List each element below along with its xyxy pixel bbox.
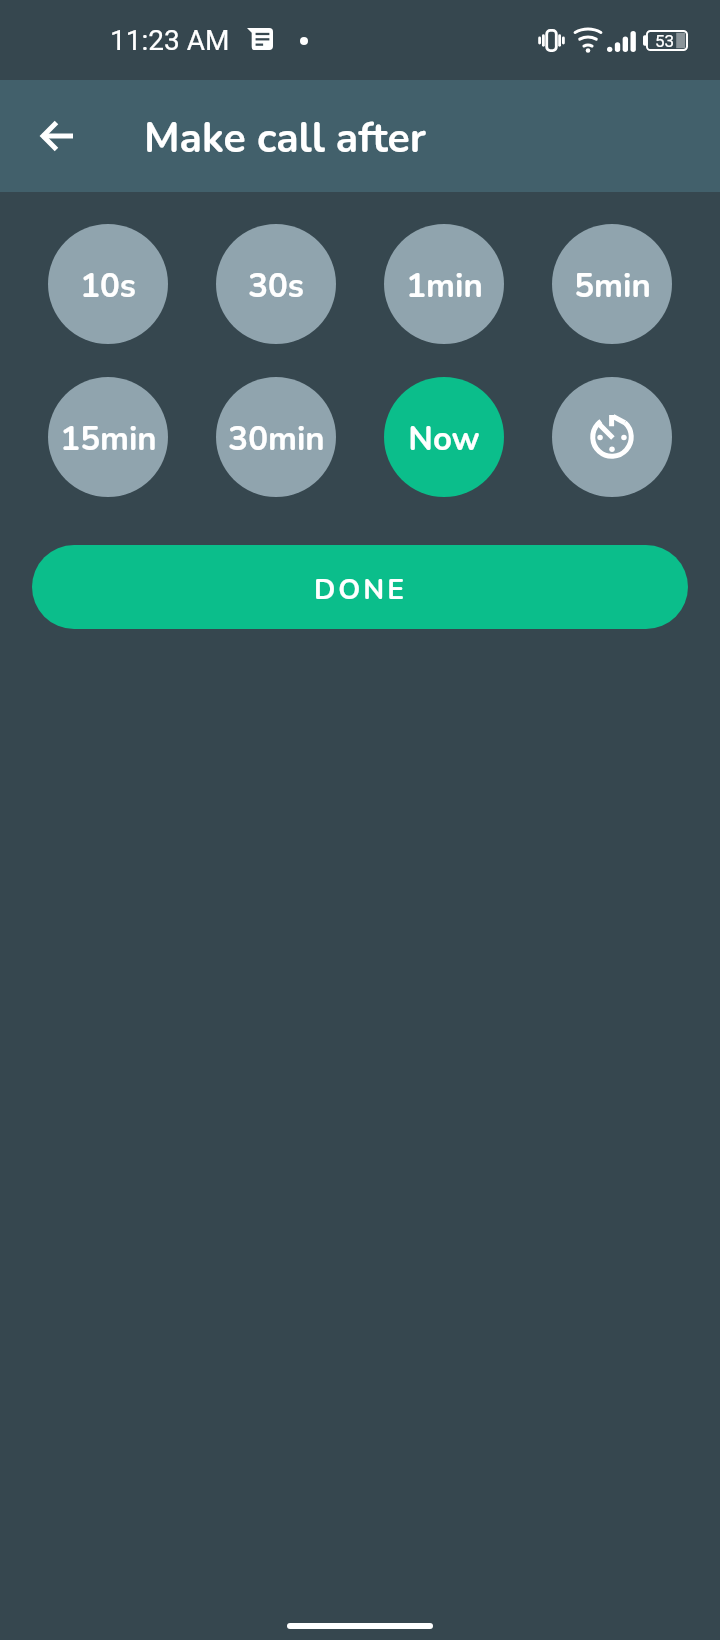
staticText: 30s bbox=[248, 264, 304, 309]
button[interactable]: Custom time bbox=[552, 377, 672, 497]
staticText: 30min bbox=[228, 417, 325, 462]
staticText: DONE bbox=[314, 571, 407, 609]
button[interactable]: 1min bbox=[384, 224, 504, 344]
staticText: 1min bbox=[406, 264, 483, 309]
staticText: 53 bbox=[655, 31, 675, 51]
staticText: 15min bbox=[60, 417, 157, 462]
button[interactable]: 15min bbox=[48, 377, 168, 497]
button[interactable]: Now bbox=[384, 377, 504, 497]
staticText: 11:23 AM bbox=[110, 24, 230, 57]
button[interactable]: 30s bbox=[216, 224, 336, 344]
staticText: Now bbox=[408, 417, 480, 462]
button[interactable]: 30min bbox=[216, 377, 336, 497]
button[interactable]: 10s bbox=[48, 224, 168, 344]
staticText: Make call after bbox=[144, 111, 426, 167]
staticText: 10s bbox=[80, 264, 136, 309]
button[interactable]: Back bbox=[24, 104, 88, 168]
button[interactable]: DONE bbox=[32, 545, 688, 629]
button[interactable]: 5min bbox=[552, 224, 672, 344]
staticText: 5min bbox=[574, 264, 651, 309]
